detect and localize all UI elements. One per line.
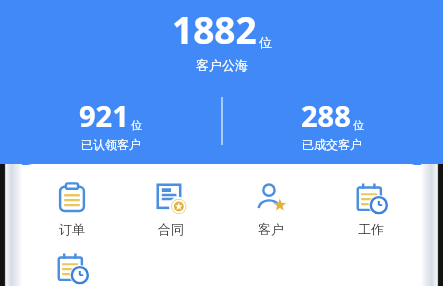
staticText: 921 [79,96,129,135]
other: 客户 [254,181,288,215]
staticText: 合同 [158,221,184,237]
button[interactable]: 客户 [221,177,321,240]
button[interactable]: 订单 [22,177,121,240]
staticText: 已认领客户 [81,137,141,152]
button[interactable]: 合同 [121,177,221,240]
button[interactable]: 288 [221,96,443,152]
staticText: 客户 [258,221,284,237]
staticText: 288 [301,96,351,135]
staticText: 订单 [59,221,85,237]
staticText: 工作 [358,221,384,237]
other: 合同 [154,181,188,215]
staticText: 位 [259,34,272,50]
staticText: 位 [131,118,142,132]
staticText: 1882 [172,4,257,54]
staticText: 客户公海 [196,57,248,73]
button[interactable]: 工作 [321,177,421,240]
button[interactable]: 工作 [22,247,122,286]
staticText: 位 [353,118,364,132]
other: 订单 [55,181,89,215]
button[interactable]: 921 [0,96,221,152]
other: 工作 [55,251,89,285]
other: 工作 [354,181,388,215]
staticText: 已成交客户 [302,137,362,152]
